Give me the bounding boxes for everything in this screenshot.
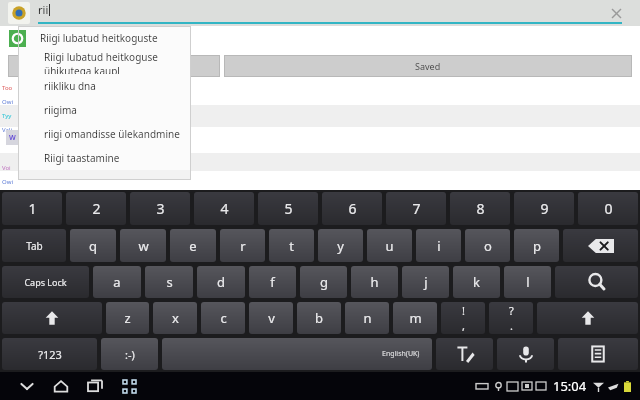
staticText: c xyxy=(220,309,227,327)
staticText: Tyy xyxy=(2,112,12,120)
button[interactable]: Tab xyxy=(2,229,66,262)
button[interactable]: y xyxy=(318,229,363,262)
button[interactable]: l xyxy=(504,266,551,298)
button[interactable]: ? . xyxy=(489,302,533,334)
button[interactable]: 1 xyxy=(2,192,62,225)
staticText: 1 xyxy=(28,199,37,218)
staticText: 7 xyxy=(412,199,421,218)
staticText: 4 xyxy=(220,199,229,218)
button[interactable]: :-) xyxy=(101,338,158,370)
button[interactable] xyxy=(162,338,432,370)
staticText: r xyxy=(240,237,246,255)
button[interactable]: a xyxy=(93,266,141,298)
button[interactable]: c xyxy=(201,302,245,334)
button[interactable]: 9 xyxy=(514,192,574,225)
button[interactable]: Caps Lock xyxy=(2,266,89,298)
button[interactable]: Recent apps xyxy=(78,372,112,400)
button[interactable]: Search provider xyxy=(9,30,26,47)
button[interactable]: Screenshot xyxy=(112,372,146,400)
button[interactable]: Shift xyxy=(537,302,638,334)
button[interactable]: s xyxy=(145,266,193,298)
button[interactable]: 6 xyxy=(322,192,382,225)
staticText: i xyxy=(437,237,441,255)
button[interactable]: u xyxy=(367,229,412,262)
button[interactable]: o xyxy=(465,229,510,262)
button[interactable]: Handwriting xyxy=(436,338,493,370)
button[interactable]: 2 xyxy=(66,192,126,225)
button[interactable]: 0 xyxy=(578,192,638,225)
button[interactable]: f xyxy=(249,266,296,298)
button[interactable]: r xyxy=(220,229,265,262)
button[interactable]: Backspace xyxy=(563,229,638,262)
staticText: l xyxy=(526,273,530,291)
button[interactable]: ! , xyxy=(441,302,485,334)
button[interactable]: i xyxy=(416,229,461,262)
button[interactable]: z xyxy=(106,302,149,334)
staticText: o xyxy=(484,237,492,255)
button[interactable]: Voice input xyxy=(497,338,554,370)
button[interactable]: 3 xyxy=(130,192,190,225)
button[interactable]: Search xyxy=(555,266,638,298)
button[interactable]: t xyxy=(269,229,314,262)
button[interactable]: n xyxy=(345,302,389,334)
button[interactable]: riigi omandisse ülekandmine xyxy=(18,122,191,146)
staticText: f xyxy=(270,273,275,291)
button[interactable]: ?123 xyxy=(2,338,97,370)
staticText: Riigi lubatud heitkoguste xyxy=(40,31,158,45)
button[interactable]: v xyxy=(249,302,293,334)
button[interactable]: d xyxy=(197,266,245,298)
button[interactable]: 8 xyxy=(450,192,510,225)
button[interactable]: h xyxy=(351,266,398,298)
button[interactable]: riikliku dna xyxy=(18,74,191,98)
button[interactable]: Menu xyxy=(558,338,638,370)
button[interactable] xyxy=(8,55,220,77)
button[interactable]: Riigi lubatud heitkoguse ühikutega kaupl xyxy=(18,50,191,74)
button[interactable]: x xyxy=(153,302,197,334)
button[interactable]: Shift xyxy=(2,302,102,334)
button[interactable]: p xyxy=(514,229,559,262)
button[interactable]: 4 xyxy=(194,192,254,225)
button[interactable]: k xyxy=(453,266,500,298)
staticText: Owi xyxy=(2,98,13,106)
staticText: 2 xyxy=(92,199,101,218)
staticText: e xyxy=(189,237,197,255)
staticText: Caps Lock xyxy=(24,276,67,288)
staticText: Saved xyxy=(415,60,441,72)
button[interactable]: b xyxy=(297,302,341,334)
staticText: Vali xyxy=(2,126,12,134)
button[interactable]: Riigi taastamine xyxy=(18,146,191,170)
staticText: ?123 xyxy=(38,347,62,362)
button[interactable]: w xyxy=(120,229,166,262)
staticText: 15:04 xyxy=(553,377,587,395)
staticText: 3 xyxy=(156,199,165,218)
button[interactable]: 7 xyxy=(386,192,446,225)
staticText: y xyxy=(337,237,344,255)
button[interactable]: g xyxy=(300,266,347,298)
staticText: s xyxy=(166,273,173,291)
button[interactable]: Home xyxy=(44,372,78,400)
staticText: Voi xyxy=(2,164,11,172)
staticText: ? . xyxy=(509,303,514,333)
staticText: W xyxy=(9,133,16,143)
button[interactable]: e xyxy=(170,229,216,262)
staticText: k xyxy=(473,273,480,291)
button[interactable]: m xyxy=(393,302,437,334)
button[interactable]: Clear text xyxy=(608,5,624,21)
staticText: Riigi lubatud heitkoguse ühikutega kaupl xyxy=(44,50,191,74)
staticText: g xyxy=(320,273,328,291)
button[interactable]: riigima xyxy=(18,98,191,122)
staticText: riigima xyxy=(44,103,77,117)
button[interactable]: q xyxy=(70,229,116,262)
button[interactable]: Back xyxy=(10,372,44,400)
button[interactable]: W xyxy=(6,130,19,145)
button[interactable]: App icon xyxy=(8,2,30,24)
staticText: z xyxy=(124,309,131,327)
staticText: w xyxy=(138,237,149,255)
staticText: 0 xyxy=(604,199,613,218)
button[interactable]: Saved xyxy=(224,55,632,77)
staticText: Too xyxy=(2,84,13,92)
staticText: a xyxy=(113,273,121,291)
button[interactable]: j xyxy=(402,266,449,298)
staticText: 8 xyxy=(476,199,485,218)
button[interactable]: 5 xyxy=(258,192,318,225)
